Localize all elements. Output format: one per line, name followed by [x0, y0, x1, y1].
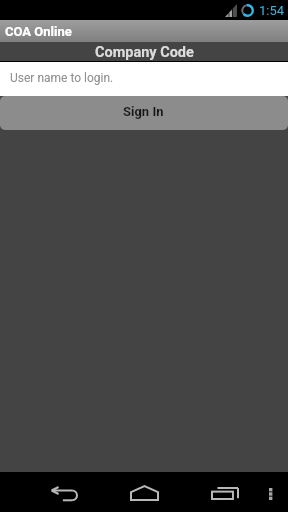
staticText: User name to login.: [10, 71, 114, 85]
button[interactable]: COA Online: [0, 20, 288, 42]
button[interactable]: User name to login.: [0, 62, 288, 96]
staticText: Company Code: [95, 44, 194, 61]
button[interactable]: More options: [253, 472, 288, 512]
button[interactable]: Sign In: [0, 96, 288, 130]
staticText: 1:54: [259, 3, 285, 18]
button[interactable]: Home: [104, 472, 184, 512]
button[interactable]: Recent apps: [186, 472, 263, 512]
staticText: Sign In: [123, 104, 164, 119]
staticText: COA Online: [5, 24, 72, 39]
button[interactable]: Back: [24, 472, 104, 512]
